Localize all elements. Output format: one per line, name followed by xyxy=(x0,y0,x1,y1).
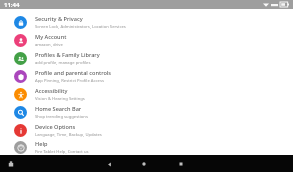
staticText: Profile and parental controls xyxy=(35,69,112,77)
staticText: Language, Time, Backup, Updates xyxy=(35,132,102,138)
staticText: Screen Lock, Administrators, Location Se… xyxy=(35,24,126,30)
button[interactable]: Recents xyxy=(175,158,187,170)
button[interactable]: Security & Privacy xyxy=(0,13,293,31)
button[interactable]: Profiles & Family Library xyxy=(0,49,293,67)
staticText: Accessibility xyxy=(35,87,68,95)
staticText: App Pinning, Restrict Profile Access xyxy=(35,78,104,84)
staticText: Vision & Hearing Settings xyxy=(35,96,85,102)
staticText: Security & Privacy xyxy=(35,15,83,23)
staticText: My Account xyxy=(35,33,67,41)
staticText: Device Options xyxy=(35,123,76,131)
staticText: Home Search Bar xyxy=(35,105,82,113)
button[interactable]: Device Options xyxy=(0,121,293,139)
button[interactable]: Home xyxy=(138,158,150,170)
staticText: amazon, drive xyxy=(35,42,63,48)
staticText: Shop trending suggestions xyxy=(35,114,88,120)
staticText: add profile, manage profiles xyxy=(35,60,91,66)
staticText: Profiles & Family Library xyxy=(35,51,100,59)
button[interactable]: Help xyxy=(0,139,293,155)
button[interactable]: Back xyxy=(103,158,115,170)
staticText: 11:44 xyxy=(4,1,20,9)
staticText: Help xyxy=(35,140,48,148)
button[interactable]: Accessibility xyxy=(0,85,293,103)
staticText: Fire Tablet Help, Contact us xyxy=(35,149,89,155)
button[interactable]: Profile and parental controls xyxy=(0,67,293,85)
button[interactable]: Home Search Bar xyxy=(0,103,293,121)
button[interactable]: My Account xyxy=(0,31,293,49)
button[interactable]: Screenshot xyxy=(5,158,17,170)
